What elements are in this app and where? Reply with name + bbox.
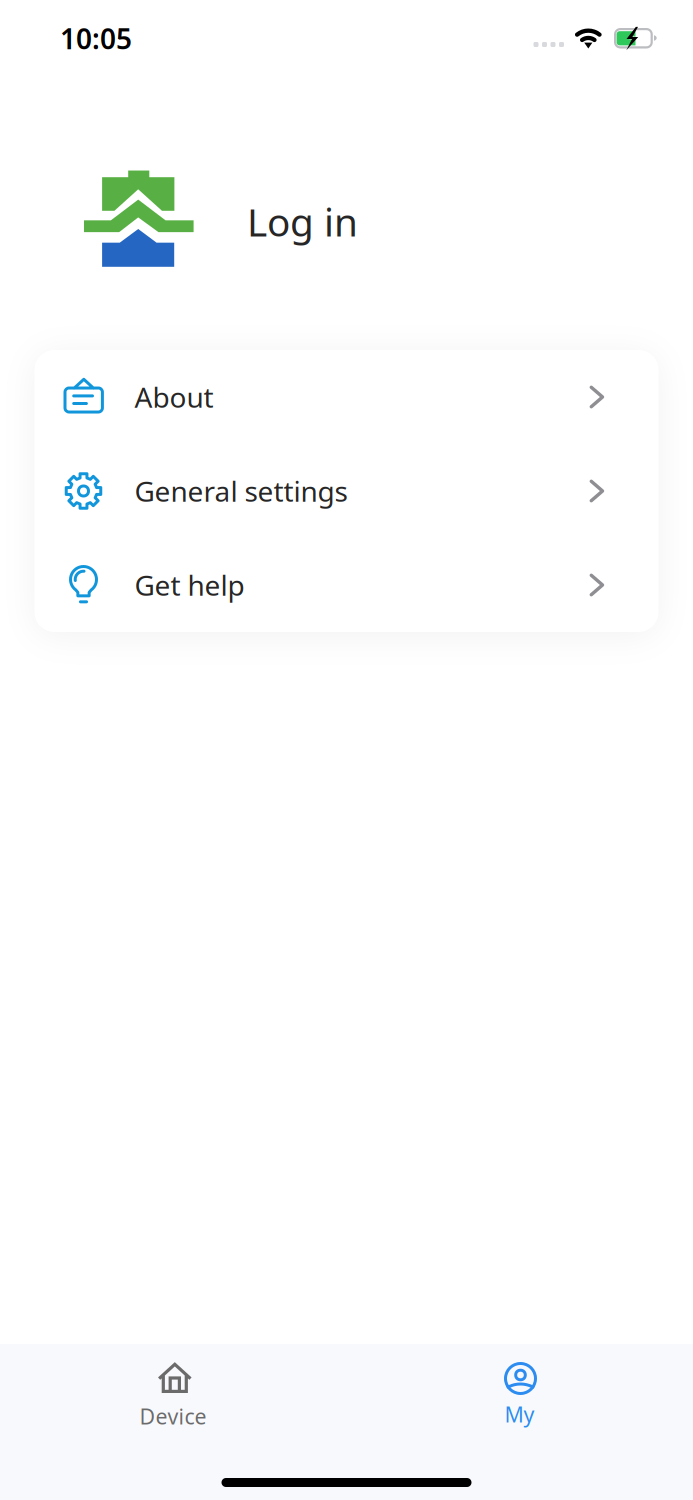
staticText: 10:05 — [60, 20, 132, 57]
staticText: General settings — [134, 472, 347, 510]
button[interactable]: Get help — [34, 538, 658, 632]
staticText: Device — [139, 1402, 206, 1430]
staticText: My — [504, 1400, 534, 1428]
button[interactable]: Device — [0, 1344, 346, 1444]
staticText: About — [134, 378, 213, 416]
button[interactable]: General settings — [34, 444, 658, 538]
button[interactable]: My — [346, 1344, 693, 1444]
button[interactable]: About — [34, 350, 658, 444]
staticText: Get help — [134, 566, 244, 604]
staticText: Log in — [247, 196, 358, 247]
